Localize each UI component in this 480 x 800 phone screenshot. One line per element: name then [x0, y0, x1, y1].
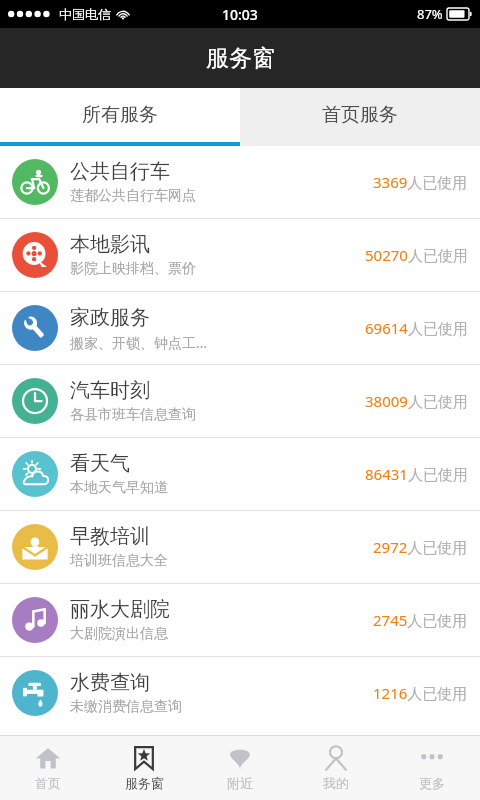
staticText: 更多: [419, 775, 445, 791]
staticText: 早教培训: [70, 524, 150, 549]
staticText: 服务窗: [206, 44, 275, 73]
button[interactable]: 服务窗: [96, 736, 192, 800]
button[interactable]: 首页服务: [240, 88, 480, 142]
staticText: 公共自行车: [70, 159, 170, 184]
button[interactable]: 公共自行车: [0, 146, 480, 218]
button[interactable]: 所有服务: [0, 88, 240, 142]
button[interactable]: 更多: [384, 736, 480, 800]
staticText: 莲都公共自行车网点: [70, 187, 196, 205]
staticText: 所有服务: [82, 103, 158, 127]
button[interactable]: 早教培训: [0, 511, 480, 583]
staticText: 首页: [35, 775, 61, 791]
staticText: 附近: [227, 775, 253, 791]
button[interactable]: 看天气: [0, 438, 480, 510]
staticText: 本地影讯: [70, 232, 150, 257]
staticText: 2972人已使用: [373, 537, 468, 557]
staticText: 87%: [417, 5, 443, 23]
staticText: 家政服务: [70, 305, 150, 330]
staticText: 1216人已使用: [373, 683, 468, 703]
staticText: 各县市班车信息查询: [70, 406, 196, 424]
staticText: 首页服务: [322, 103, 398, 127]
button[interactable]: 水费查询: [0, 657, 480, 729]
staticText: 本地天气早知道: [70, 479, 168, 497]
staticText: 搬家、开锁、钟点工…: [70, 333, 208, 352]
staticText: 大剧院演出信息: [70, 625, 168, 643]
staticText: 10:03: [222, 5, 258, 24]
staticText: 水费查询: [70, 670, 150, 695]
staticText: 50270人已使用: [365, 245, 468, 265]
staticText: 86431人已使用: [365, 464, 468, 484]
staticText: 2745人已使用: [373, 610, 468, 630]
staticText: 服务窗: [125, 775, 164, 791]
staticText: 3369人已使用: [373, 172, 468, 192]
button[interactable]: 丽水大剧院: [0, 584, 480, 656]
staticText: 38009人已使用: [365, 391, 468, 411]
button[interactable]: 本地影讯: [0, 219, 480, 291]
button[interactable]: 家政服务: [0, 292, 480, 364]
button[interactable]: 汽车时刻: [0, 365, 480, 437]
staticText: 中国电信: [59, 6, 111, 22]
button[interactable]: 首页: [0, 736, 96, 800]
staticText: 丽水大剧院: [70, 597, 170, 622]
button[interactable]: 我的: [288, 736, 384, 800]
staticText: 未缴消费信息查询: [70, 698, 182, 716]
staticText: 影院上映排档、票价: [70, 260, 196, 278]
staticText: 我的: [323, 775, 349, 791]
staticText: 看天气: [70, 451, 130, 476]
staticText: 69614人已使用: [365, 318, 468, 338]
staticText: 汽车时刻: [70, 378, 150, 403]
button[interactable]: 附近: [192, 736, 288, 800]
staticText: 培训班信息大全: [70, 552, 168, 570]
